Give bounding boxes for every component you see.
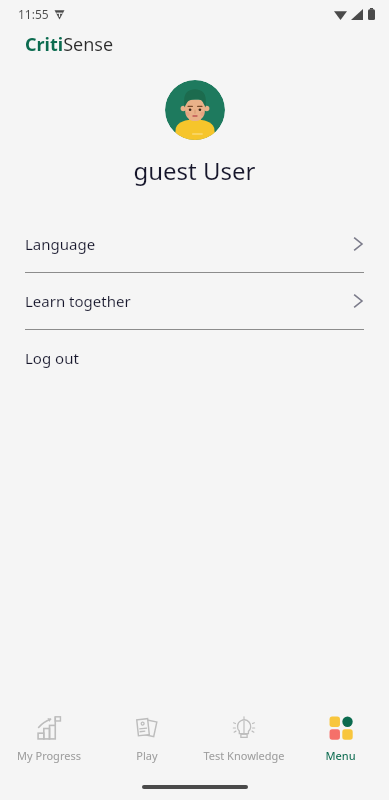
button[interactable]: My Progress bbox=[0, 704, 98, 774]
other: My Progress bbox=[36, 715, 62, 741]
staticText: Learn together bbox=[25, 291, 131, 311]
staticText: Menu bbox=[325, 748, 356, 763]
button[interactable]: Language bbox=[0, 216, 389, 272]
other: Test Knowledge bbox=[231, 715, 257, 741]
staticText: 11:55 bbox=[18, 6, 49, 22]
staticText: Language bbox=[25, 234, 96, 254]
button[interactable]: Log out bbox=[0, 330, 389, 386]
staticText: Play bbox=[136, 748, 158, 763]
button[interactable]: Menu bbox=[292, 704, 389, 774]
other: Menu bbox=[328, 715, 354, 741]
other: Play bbox=[134, 715, 160, 741]
staticText: My Progress bbox=[17, 748, 81, 763]
button[interactable]: Play bbox=[98, 704, 195, 774]
staticText: Log out bbox=[25, 348, 79, 368]
button[interactable]: Learn together bbox=[0, 273, 389, 329]
staticText: CritiSense bbox=[25, 32, 114, 57]
staticText: Test Knowledge bbox=[203, 748, 285, 763]
button[interactable]: Test Knowledge bbox=[195, 704, 292, 774]
staticText: guest User bbox=[0, 154, 389, 187]
